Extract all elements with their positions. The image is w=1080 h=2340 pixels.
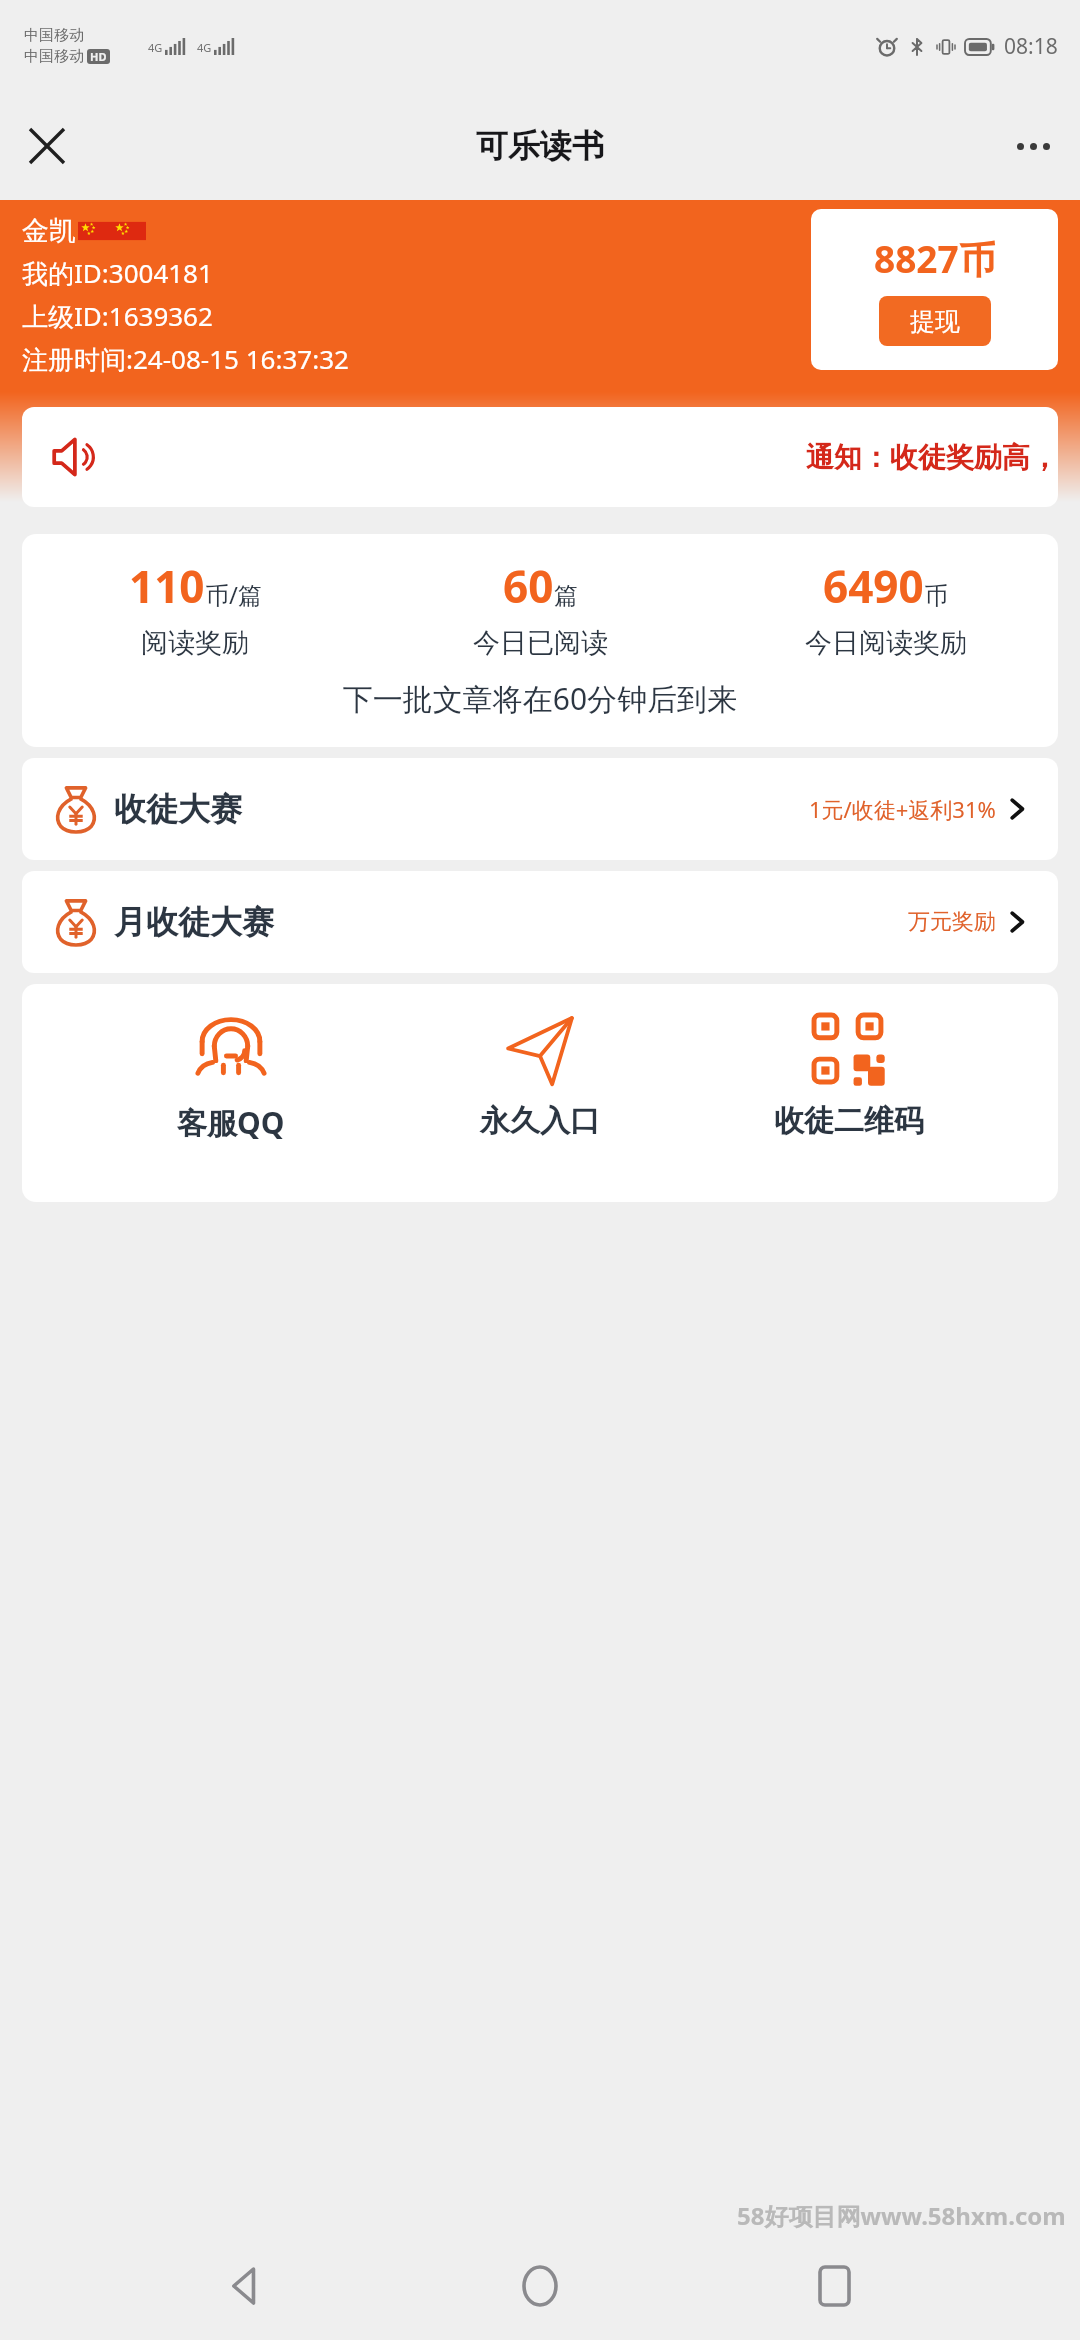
staticText: 今日阅读奖励 <box>805 626 967 660</box>
staticText: 阅读奖励 <box>141 626 249 660</box>
staticText: 4G <box>197 40 212 55</box>
staticText: 今日已阅读 <box>473 626 608 660</box>
button[interactable]: 110 <box>22 534 1058 747</box>
staticText: 篇 <box>554 581 578 611</box>
button[interactable]: 通知：收徒奖励高， <box>22 407 1058 507</box>
staticText: 上级ID:1639362 <box>22 298 213 334</box>
button[interactable]: 月收徒大赛 <box>22 871 1058 973</box>
button[interactable]: 客服QQ <box>131 1012 331 1143</box>
staticText: 110 <box>129 556 205 616</box>
staticText: 通知：收徒奖励高， <box>806 440 1058 475</box>
staticText: 08:18 <box>1004 32 1058 61</box>
staticText: 6490 <box>823 556 924 616</box>
button[interactable]: 提现 <box>879 296 991 346</box>
button[interactable]: More options <box>1000 113 1066 179</box>
staticText: 提现 <box>910 306 960 337</box>
staticText: 币/篇 <box>205 578 262 611</box>
staticText: 中国移动 <box>24 26 84 45</box>
staticText: 永久入口 <box>480 1102 600 1140</box>
staticText: 60 <box>503 556 554 616</box>
staticText: 8827币 <box>874 233 996 284</box>
staticText: 币 <box>924 581 948 611</box>
staticText: 注册时间:24-08-15 16:37:32 <box>22 341 349 377</box>
button[interactable]: Back <box>198 2238 294 2334</box>
staticText: 万元奖励 <box>908 908 996 936</box>
staticText: 收徒大赛 <box>114 789 242 829</box>
staticText: 中国移动 <box>24 47 84 66</box>
staticText: HD <box>90 49 107 64</box>
staticText: 收徒二维码 <box>774 1102 924 1140</box>
staticText: 4G <box>148 40 163 55</box>
staticText: 月收徒大赛 <box>114 902 274 942</box>
staticText: 客服QQ <box>177 1102 285 1143</box>
staticText: 1元/收徒+返利31% <box>809 794 996 824</box>
button[interactable]: Recent apps <box>786 2238 882 2334</box>
staticText: 58好项目网www.58hxm.com <box>737 2199 1066 2232</box>
staticText: 可乐读书 <box>476 126 604 166</box>
button[interactable]: Close <box>14 113 80 179</box>
button[interactable]: 收徒大赛 <box>22 758 1058 860</box>
staticText: 我的ID:3004181 <box>22 255 213 291</box>
button[interactable]: Home <box>492 2238 588 2334</box>
button[interactable]: 8827币 <box>811 209 1058 370</box>
staticText: 金凯 <box>22 214 76 248</box>
button[interactable]: 永久入口 <box>440 1012 640 1140</box>
button[interactable]: 收徒二维码 <box>749 1012 949 1140</box>
staticText: 下一批文章将在60分钟后到来 <box>22 678 1058 719</box>
